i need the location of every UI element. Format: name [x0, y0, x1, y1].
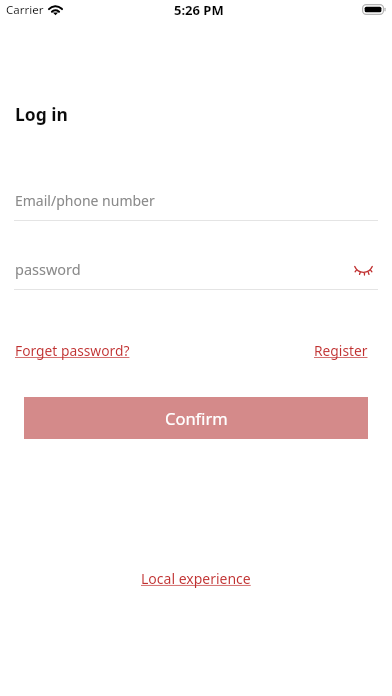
button[interactable]: Confirm: [24, 397, 368, 439]
staticText: Forget password?: [15, 341, 130, 360]
staticText: Confirm: [165, 407, 228, 429]
staticText: 5:26 PM: [174, 1, 224, 19]
button[interactable]: Register: [308, 335, 374, 366]
staticText: Register: [314, 341, 368, 360]
button[interactable]: Local experience: [131, 563, 261, 594]
staticText: Local experience: [141, 569, 251, 588]
staticText: password: [15, 259, 81, 279]
staticText: Email/phone number: [15, 191, 155, 210]
staticText: Log in: [15, 102, 68, 126]
button[interactable]: Forget password?: [9, 335, 136, 366]
staticText: Carrier: [6, 2, 44, 18]
button[interactable]: Show password: [347, 254, 379, 286]
